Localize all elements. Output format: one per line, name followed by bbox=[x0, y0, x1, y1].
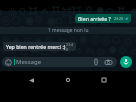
button[interactable]: Camera bbox=[103, 57, 113, 67]
staticText: Bien arrivée ? bbox=[78, 15, 111, 22]
button[interactable]: Yep bien rentrée merci :) bbox=[3, 42, 76, 51]
button[interactable]: Attach bbox=[91, 57, 101, 67]
staticText: 1 message non lu bbox=[48, 27, 89, 34]
staticText: Message bbox=[16, 58, 42, 66]
staticText: 23:26 bbox=[114, 16, 124, 21]
staticText: Yep bien rentrée merci :) bbox=[6, 43, 66, 50]
staticText: 23:48 bbox=[66, 42, 75, 51]
button[interactable]: Back bbox=[25, 74, 37, 86]
button[interactable]: Home bbox=[62, 74, 74, 86]
button[interactable]: Recents bbox=[98, 74, 110, 86]
button[interactable]: Message bbox=[2, 57, 117, 67]
button[interactable]: Bien arrivée ? bbox=[75, 14, 131, 23]
button[interactable]: Voice message bbox=[120, 56, 132, 68]
